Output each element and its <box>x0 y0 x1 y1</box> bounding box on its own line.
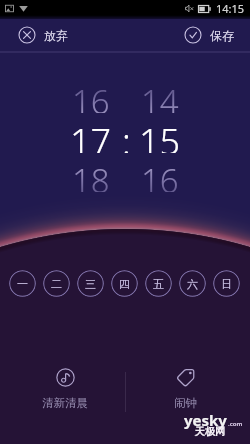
button[interactable]: 三 <box>77 270 104 297</box>
staticText: 16 <box>72 79 110 113</box>
staticText: 保存 <box>210 28 234 43</box>
button[interactable]: 放弃 <box>12 18 76 52</box>
staticText: 14:15 <box>216 1 245 16</box>
staticText: 放弃 <box>44 28 68 43</box>
staticText: 清新清晨 <box>42 396 88 410</box>
staticText: .com <box>228 420 243 428</box>
staticText: 15 <box>139 117 181 153</box>
staticText: 17 <box>70 117 112 153</box>
staticText: 四 <box>119 277 130 291</box>
staticText: 闹钟 <box>174 396 197 410</box>
staticText: 14 <box>141 79 179 113</box>
staticText: 一 <box>17 277 28 291</box>
button[interactable]: 16 <box>61 79 121 113</box>
staticText: 二 <box>51 277 62 291</box>
staticText: 五 <box>153 277 164 291</box>
button[interactable]: 日 <box>213 270 240 297</box>
button[interactable]: 闹钟 <box>145 358 225 414</box>
staticText: yesky <box>184 410 227 430</box>
button[interactable]: 五 <box>145 270 172 297</box>
staticText: 三 <box>85 277 96 291</box>
button[interactable]: 一 <box>9 270 36 297</box>
staticText: 六 <box>187 277 198 291</box>
staticText: : <box>122 117 131 153</box>
button[interactable]: 16 <box>130 158 190 192</box>
button[interactable]: 二 <box>43 270 70 297</box>
staticText: 日 <box>221 277 232 291</box>
button[interactable]: 18 <box>61 158 121 192</box>
button[interactable]: 保存 <box>176 18 240 52</box>
button[interactable]: 四 <box>111 270 138 297</box>
button[interactable]: 清新清晨 <box>25 358 105 414</box>
staticText: 天极网 <box>195 425 225 438</box>
button[interactable]: 六 <box>179 270 206 297</box>
staticText: 18 <box>72 158 110 192</box>
button[interactable]: 14 <box>130 79 190 113</box>
staticText: 16 <box>141 158 179 192</box>
